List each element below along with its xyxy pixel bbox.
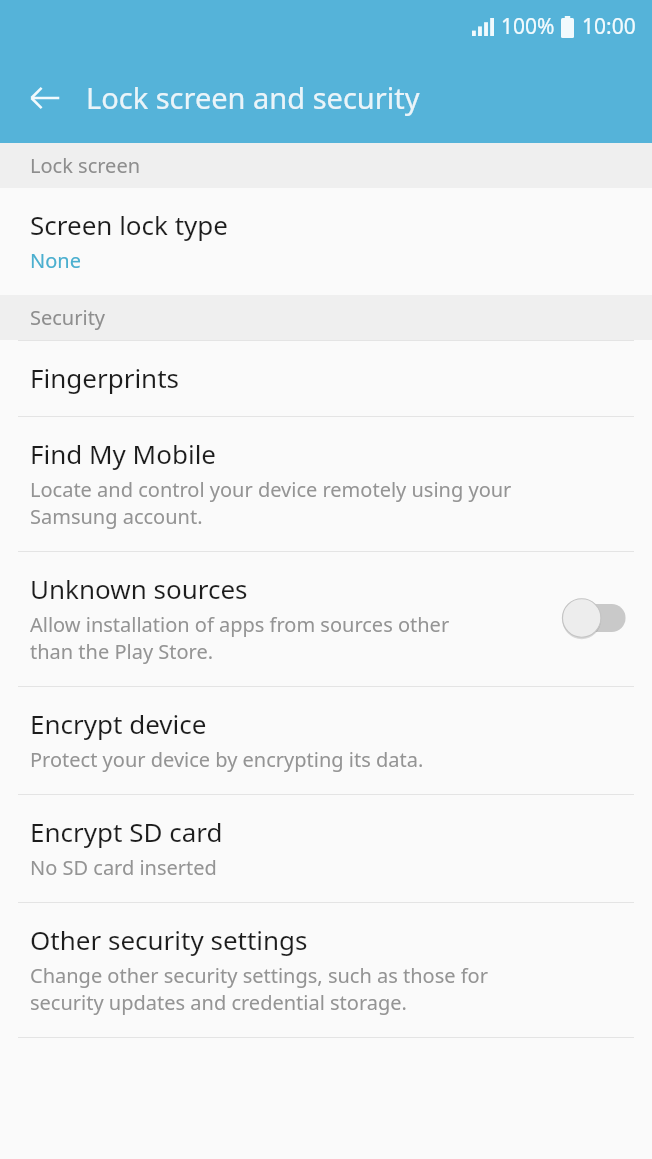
button[interactable]: Encrypt device <box>0 687 652 794</box>
staticText: Screen lock type <box>30 207 228 242</box>
staticText: None <box>30 247 81 274</box>
staticText: Locate and control your device remotely … <box>30 476 512 530</box>
button[interactable]: Unknown sources <box>0 552 652 686</box>
button[interactable]: Fingerprints <box>0 341 652 416</box>
staticText: Change other security settings, such as … <box>30 962 488 1016</box>
staticText: Allow installation of apps from sources … <box>30 611 450 665</box>
staticText: 10:00 <box>582 12 636 41</box>
button[interactable]: Unknown sources toggle, off <box>556 592 630 644</box>
staticText: Encrypt SD card <box>30 814 223 849</box>
staticText: Encrypt device <box>30 706 207 741</box>
button[interactable]: Other security settings <box>0 903 652 1037</box>
button[interactable]: Screen lock type <box>0 188 652 295</box>
staticText: Unknown sources <box>30 571 248 606</box>
staticText: 100% <box>501 12 555 41</box>
staticText: Security <box>30 304 106 331</box>
staticText: No SD card inserted <box>30 854 217 881</box>
staticText: Lock screen <box>30 152 141 179</box>
button[interactable]: Encrypt SD card <box>0 795 652 902</box>
staticText: Lock screen and security <box>86 78 420 117</box>
staticText: Fingerprints <box>30 360 180 395</box>
button[interactable]: Back <box>14 67 76 129</box>
staticText: Protect your device by encrypting its da… <box>30 746 424 773</box>
staticText: Other security settings <box>30 922 308 957</box>
staticText: Find My Mobile <box>30 436 217 471</box>
button[interactable]: Find My Mobile <box>0 417 652 551</box>
